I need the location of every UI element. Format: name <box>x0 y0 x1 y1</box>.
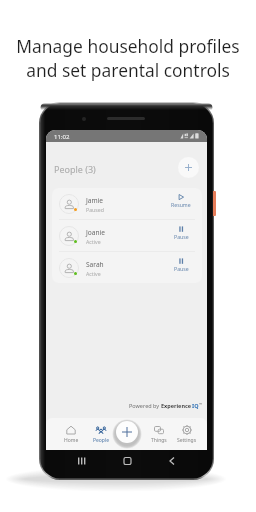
button[interactable]: Things <box>147 425 171 444</box>
staticText: and set parental controls <box>26 58 230 82</box>
staticText: Pause <box>174 233 189 240</box>
staticText: Manage household profiles <box>16 34 240 58</box>
staticText: Active <box>86 270 101 277</box>
button[interactable]: Jamie <box>52 188 202 219</box>
staticText: Things <box>151 437 167 444</box>
staticText: Active <box>86 238 101 245</box>
staticText: Paused <box>86 206 104 213</box>
staticText: People <box>93 437 110 444</box>
button[interactable]: Sarah <box>52 252 202 283</box>
staticText: Powered by <box>129 402 161 409</box>
staticText: Pause <box>174 265 189 272</box>
staticText: Resume <box>171 201 191 208</box>
button[interactable]: Add <box>116 421 138 443</box>
staticText: Joanie <box>86 228 105 237</box>
staticText: Settings <box>177 437 197 444</box>
button[interactable]: Pause <box>165 258 197 272</box>
staticText: Home <box>64 437 79 444</box>
staticText: Experience <box>161 402 192 409</box>
button[interactable]: Pause <box>165 226 197 240</box>
button[interactable]: Resume <box>165 194 197 208</box>
button[interactable]: People <box>89 425 113 444</box>
button[interactable]: Settings <box>175 425 199 444</box>
staticText: IQ <box>192 402 199 409</box>
button[interactable]: Home <box>59 425 83 444</box>
button[interactable]: Add person <box>178 157 199 178</box>
staticText: ™ <box>199 402 203 407</box>
staticText: Sarah <box>86 260 104 269</box>
staticText: People (3) <box>54 163 96 175</box>
staticText: 11:02 <box>54 133 70 141</box>
staticText: Jamie <box>86 196 104 205</box>
button[interactable]: Joanie <box>52 220 202 251</box>
